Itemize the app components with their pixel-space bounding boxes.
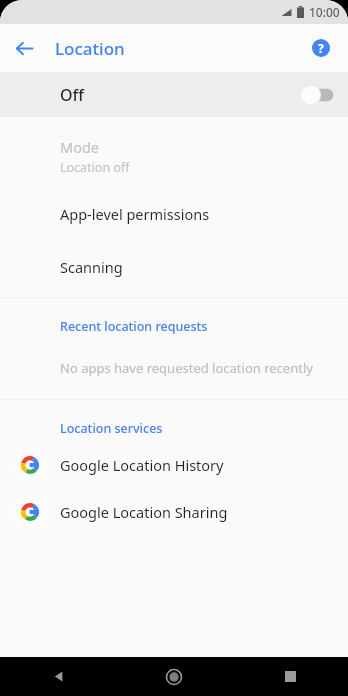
- button[interactable]: Mode: [0, 129, 348, 186]
- button[interactable]: Off: [0, 72, 348, 117]
- button[interactable]: Location services: [0, 400, 348, 441]
- button[interactable]: App-level permissions: [0, 186, 348, 242]
- staticText: Recent location requests: [60, 318, 208, 335]
- staticText: Off: [60, 84, 84, 106]
- staticText: Location services: [60, 420, 163, 437]
- button[interactable]: Home: [116, 657, 232, 696]
- staticText: Location off: [60, 159, 130, 176]
- button[interactable]: Back: [0, 657, 116, 696]
- staticText: No apps have requested location recently: [60, 359, 313, 377]
- button[interactable]: Back: [6, 30, 42, 66]
- staticText: Google Location Sharing: [60, 502, 228, 522]
- button[interactable]: Help: [304, 31, 338, 65]
- button[interactable]: Google Location Sharing: [0, 488, 348, 535]
- staticText: Scanning: [60, 257, 123, 277]
- staticText: Google Location History: [60, 455, 224, 475]
- button[interactable]: Scanning: [0, 242, 348, 297]
- staticText: Mode: [60, 137, 100, 157]
- staticText: App-level permissions: [60, 204, 210, 224]
- button[interactable]: Google Location History: [0, 441, 348, 488]
- button[interactable]: Recent location requests: [0, 298, 348, 343]
- staticText: ?: [318, 40, 324, 56]
- staticText: 10:00: [309, 4, 340, 20]
- button[interactable]: Recent apps: [232, 657, 348, 696]
- staticText: Location: [55, 37, 125, 60]
